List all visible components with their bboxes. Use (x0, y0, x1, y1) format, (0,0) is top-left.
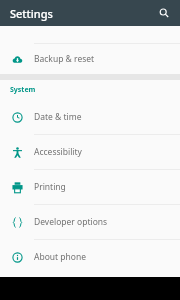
staticText: Accessibility (34, 146, 82, 158)
staticText: Printing (34, 181, 66, 193)
button[interactable]: Printing (0, 170, 180, 204)
staticText: About phone (34, 251, 87, 263)
staticText: Date & time (34, 111, 82, 123)
button[interactable]: Developer options (0, 205, 180, 239)
staticText: Backup & reset (34, 53, 95, 65)
button[interactable]: Accessibility (0, 135, 180, 169)
button[interactable]: About phone (0, 240, 180, 274)
staticText: System (10, 85, 36, 95)
button[interactable]: Search (154, 3, 174, 23)
button[interactable]: Date & time (0, 100, 180, 134)
button[interactable]: Backup & reset (0, 44, 180, 74)
staticText: Developer options (34, 216, 108, 228)
staticText: Settings (10, 6, 53, 21)
